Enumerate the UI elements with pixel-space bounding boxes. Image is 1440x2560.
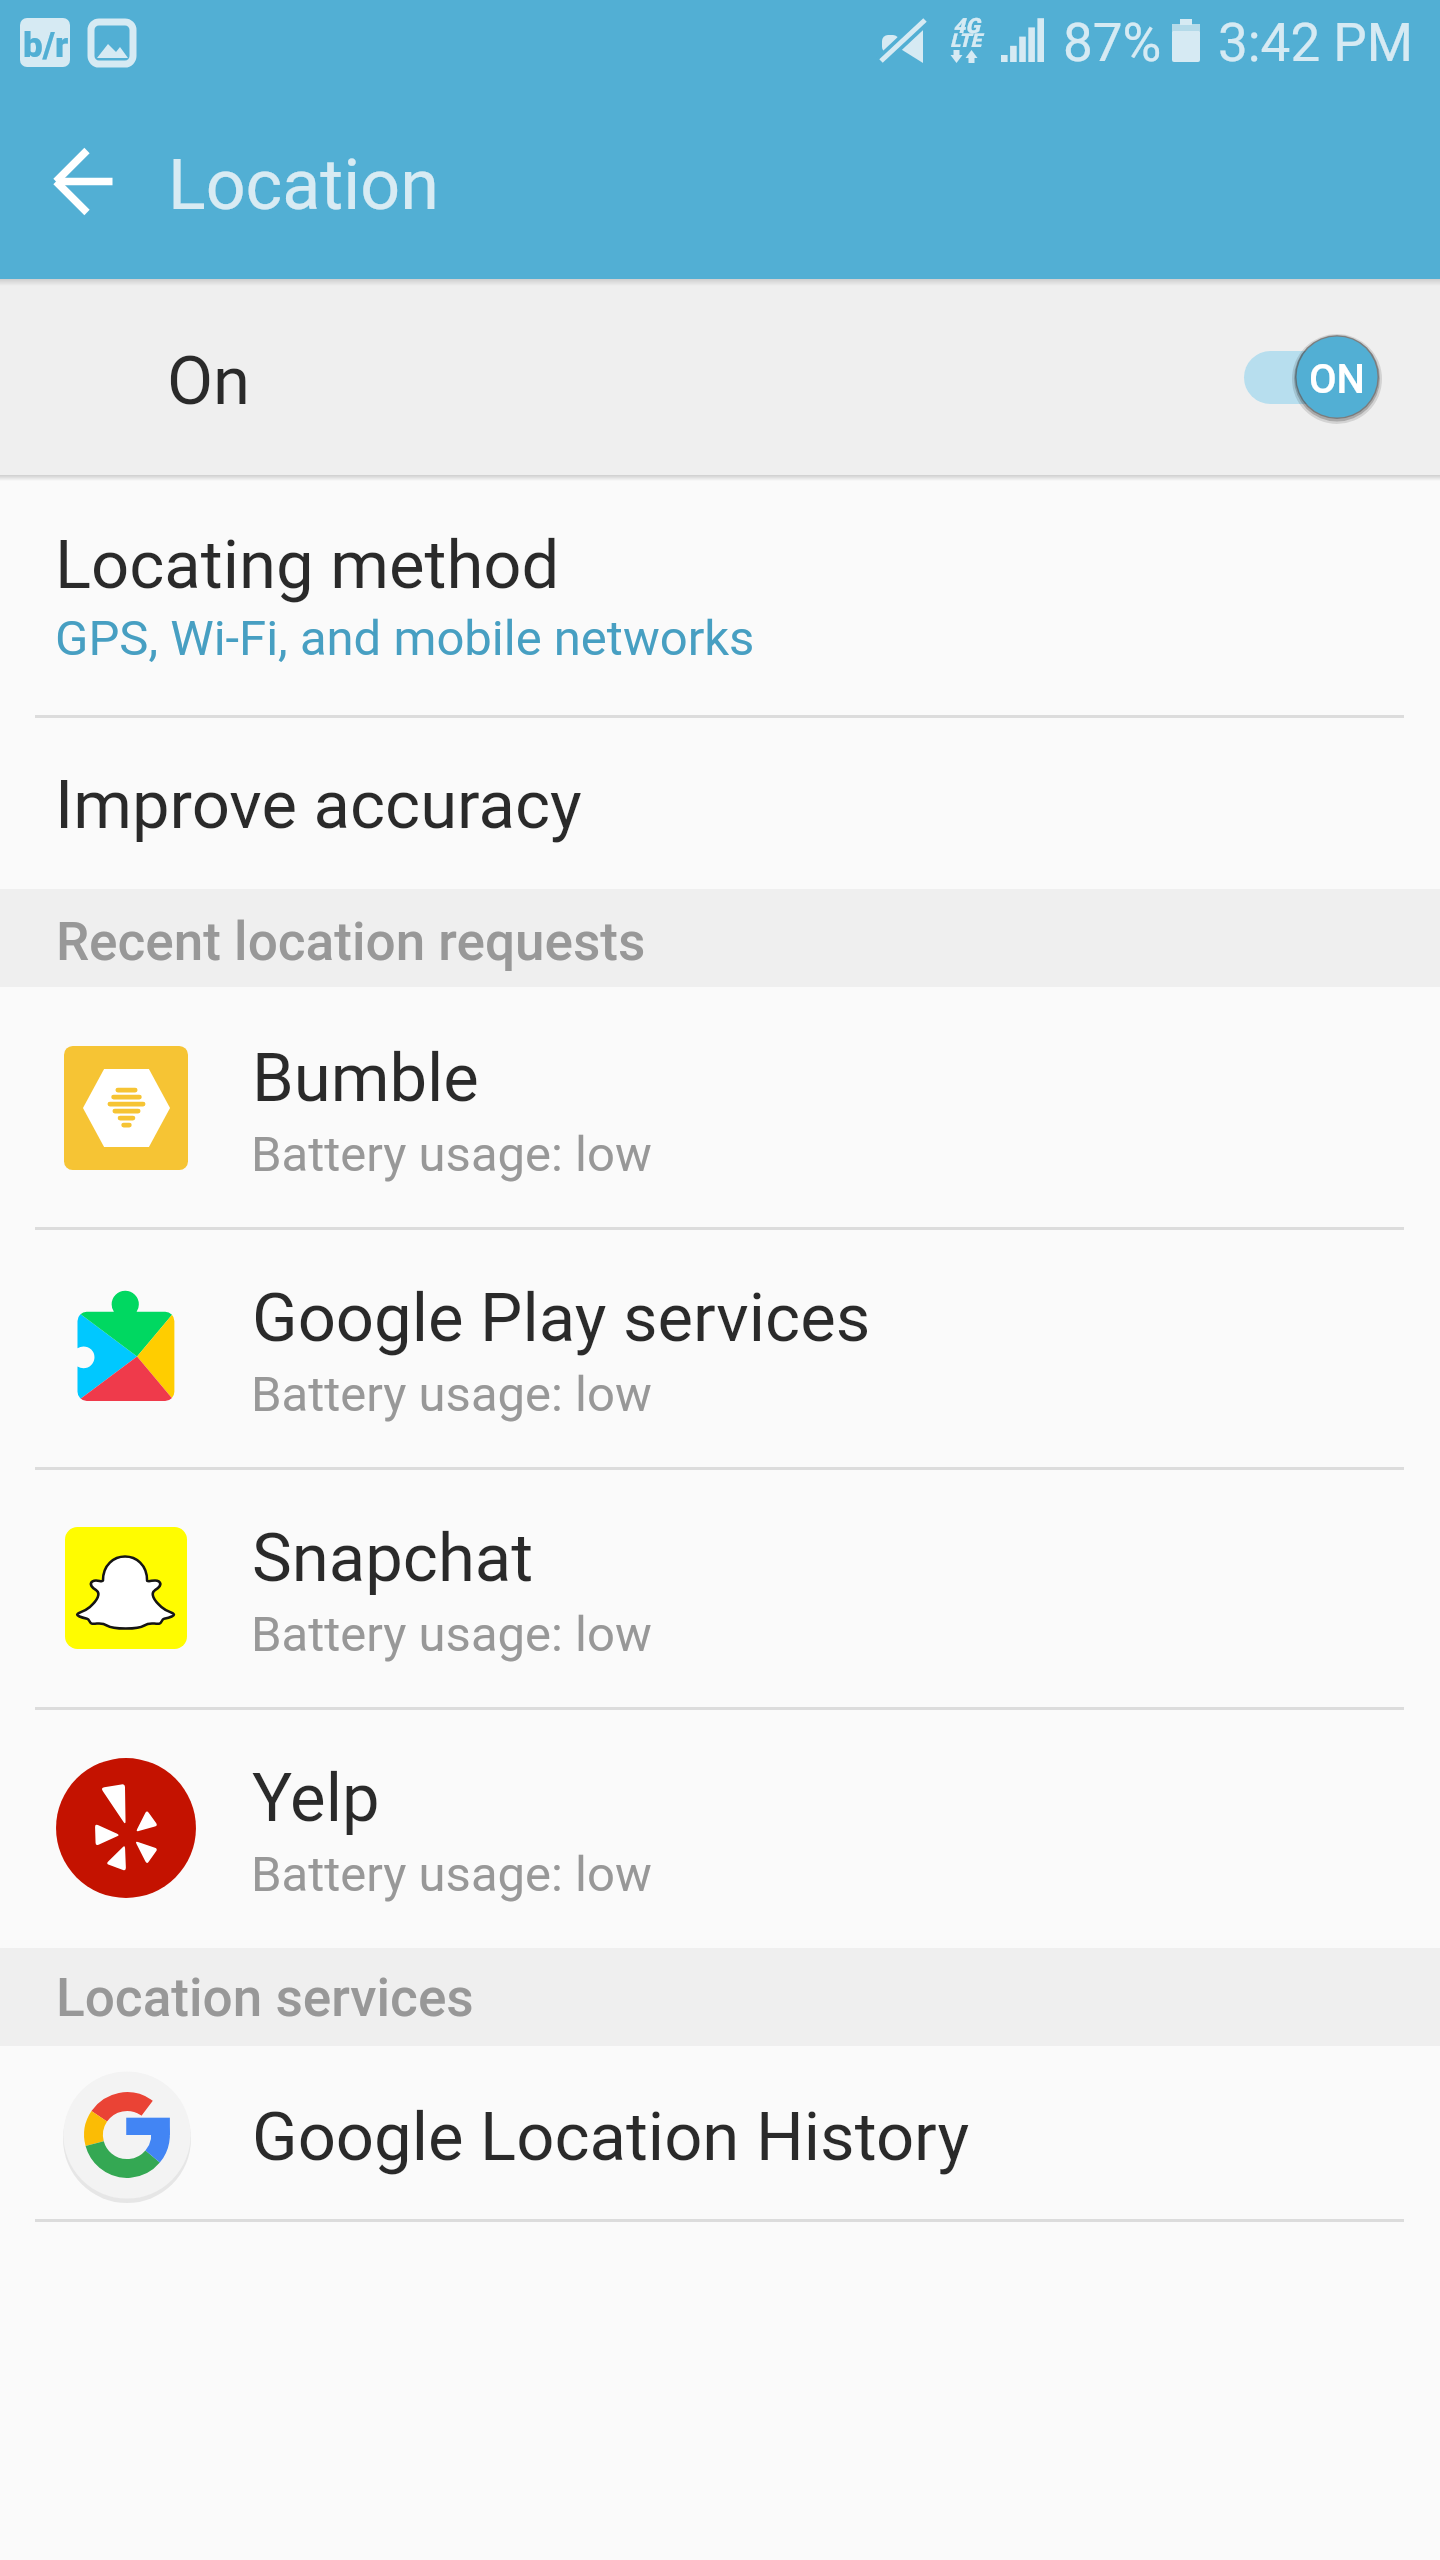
button[interactable] <box>0 718 1440 889</box>
button[interactable]: Location on/off switch <box>1240 330 1390 426</box>
staticText: Recent location requests <box>56 911 646 973</box>
staticText: 4G <box>953 14 980 39</box>
staticText: Location services <box>56 1967 474 2029</box>
staticText: b/r <box>23 25 69 66</box>
button[interactable] <box>0 1227 1440 1467</box>
button[interactable]: Navigate up <box>36 130 146 240</box>
staticText: Battery usage: low <box>251 1126 652 1183</box>
staticText: Snapchat <box>252 1519 534 1598</box>
staticText: Battery usage: low <box>251 1366 652 1423</box>
button[interactable] <box>0 481 1440 715</box>
staticText: Google Play services <box>252 1279 871 1358</box>
button[interactable] <box>0 2046 1440 2219</box>
staticText: Battery usage: low <box>251 1606 652 1663</box>
staticText: GPS, Wi-Fi, and mobile networks <box>55 610 755 667</box>
staticText: LTE <box>950 29 982 51</box>
staticText: Google Location History <box>252 2098 970 2177</box>
button[interactable] <box>0 1467 1440 1707</box>
staticText: Yelp <box>252 1759 380 1838</box>
staticText: Location <box>168 144 439 226</box>
staticText: Improve accuracy <box>55 766 582 845</box>
button[interactable] <box>0 1707 1440 1947</box>
button[interactable] <box>0 279 1440 475</box>
staticText: 87% <box>1063 12 1162 74</box>
staticText: Bumble <box>252 1039 479 1118</box>
staticText: ON <box>1309 356 1366 403</box>
staticText: 3:42 PM <box>1218 12 1414 74</box>
staticText: Locating method <box>55 526 560 605</box>
staticText: Battery usage: low <box>251 1846 652 1903</box>
staticText: On <box>167 342 251 421</box>
button[interactable] <box>0 987 1440 1227</box>
